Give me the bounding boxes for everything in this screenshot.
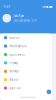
staticText: jack.ryan@mail.com	[13, 19, 36, 22]
staticText: About	[9, 78, 18, 81]
staticText: Account	[9, 36, 20, 39]
staticText: 9:41	[4, 5, 11, 9]
button[interactable]: Appearance	[0, 50, 52, 59]
staticText: Sign out	[9, 86, 21, 90]
button[interactable]: Storage	[0, 67, 52, 75]
button[interactable]: Notifications	[0, 42, 52, 50]
staticText: Storage	[9, 69, 19, 73]
staticText: Jack Ryan	[13, 14, 24, 18]
staticText: Appearance	[9, 53, 25, 56]
button[interactable]: Privacy	[0, 59, 52, 67]
button[interactable]: Sign out	[0, 84, 52, 92]
button[interactable]: Compose	[47, 90, 51, 94]
button[interactable]: Account	[0, 33, 52, 42]
staticText: Notifications	[9, 44, 26, 48]
button[interactable]: About	[0, 75, 52, 84]
staticText: Privacy	[9, 61, 17, 65]
